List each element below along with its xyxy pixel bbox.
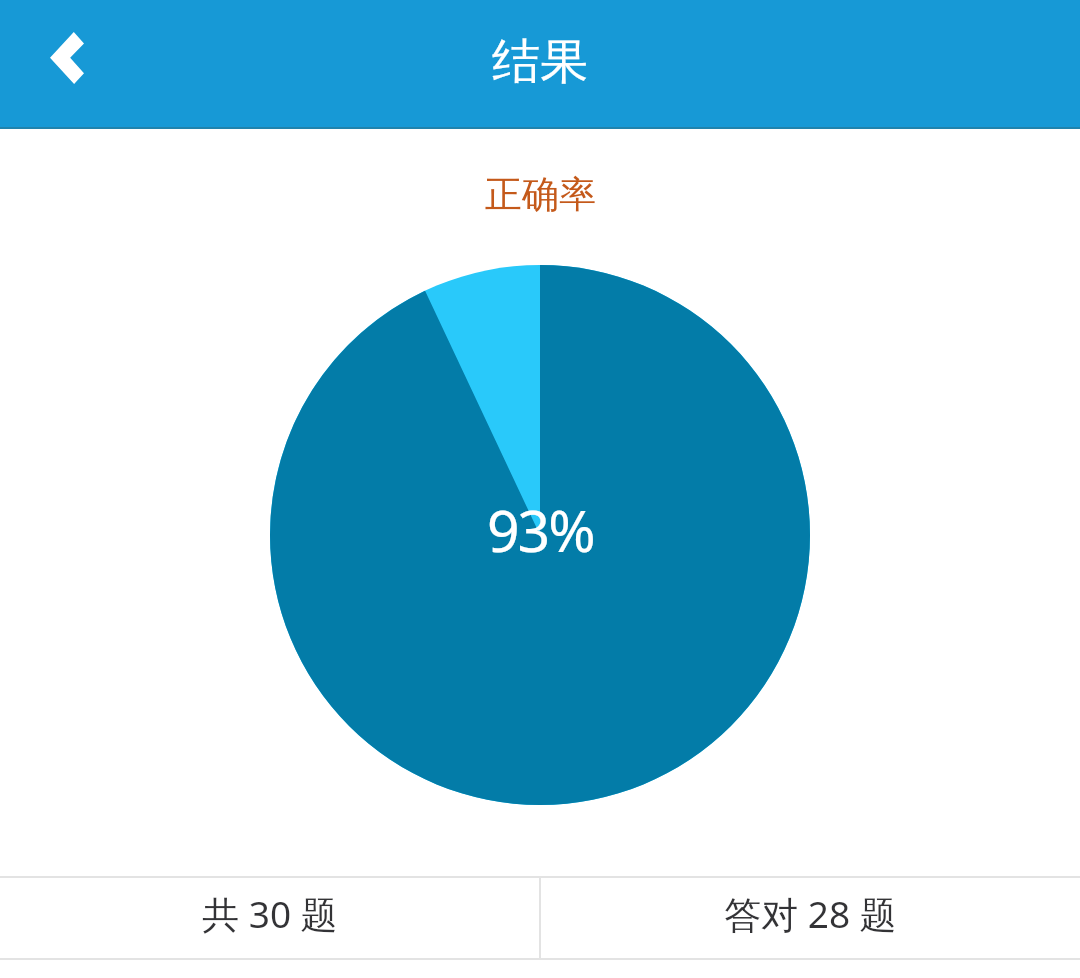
- button[interactable]: 答对 28 题: [541, 878, 1080, 958]
- staticText: 共 30 题: [202, 888, 338, 939]
- staticText: 正确率: [485, 171, 596, 218]
- button[interactable]: Back: [19, 10, 115, 106]
- button[interactable]: 共 30 题: [0, 878, 539, 958]
- staticText: 93%: [487, 491, 594, 569]
- staticText: 答对 28 题: [724, 888, 897, 939]
- staticText: 结果: [492, 32, 588, 92]
